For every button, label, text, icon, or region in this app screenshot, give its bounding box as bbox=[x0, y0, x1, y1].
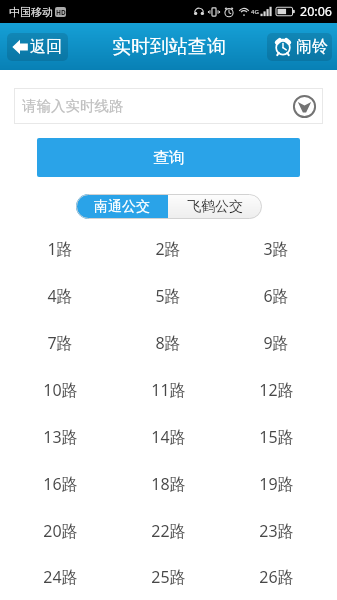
staticText: 闹铃 bbox=[296, 37, 328, 57]
staticText: 18路 bbox=[151, 473, 186, 495]
button[interactable]: 15路 bbox=[222, 413, 330, 460]
button[interactable]: 13路 bbox=[6, 413, 114, 460]
button[interactable]: 5路 bbox=[114, 272, 222, 319]
staticText: 4G bbox=[251, 8, 259, 16]
staticText: 19路 bbox=[259, 473, 294, 495]
staticText: 实时到站查询 bbox=[112, 35, 226, 59]
staticText: HD bbox=[56, 8, 66, 17]
button[interactable]: 20路 bbox=[6, 507, 114, 554]
button[interactable]: 返回 bbox=[7, 33, 68, 61]
button[interactable]: 8路 bbox=[114, 319, 222, 366]
staticText: 20路 bbox=[43, 520, 78, 542]
button[interactable]: 24路 bbox=[6, 554, 114, 600]
staticText: 南通公交 bbox=[94, 198, 150, 216]
staticText: 23路 bbox=[259, 520, 294, 542]
button[interactable]: 9路 bbox=[222, 319, 330, 366]
staticText: 26路 bbox=[259, 566, 294, 588]
button[interactable]: 南通公交 bbox=[76, 194, 168, 219]
staticText: 15路 bbox=[259, 426, 294, 448]
button[interactable]: 4路 bbox=[6, 272, 114, 319]
staticText: 请输入实时线路 bbox=[22, 97, 124, 115]
staticText: 9路 bbox=[263, 332, 289, 354]
staticText: 4路 bbox=[47, 285, 73, 307]
staticText: 10路 bbox=[43, 379, 78, 401]
staticText: 3路 bbox=[263, 238, 289, 260]
button[interactable]: 19路 bbox=[222, 460, 330, 507]
button[interactable]: 25路 bbox=[114, 554, 222, 600]
button[interactable]: 查询 bbox=[37, 138, 300, 177]
staticText: 20:06 bbox=[300, 3, 332, 20]
staticText: 13路 bbox=[43, 426, 78, 448]
button[interactable]: 7路 bbox=[6, 319, 114, 366]
button[interactable]: 14路 bbox=[114, 413, 222, 460]
button[interactable]: 26路 bbox=[222, 554, 330, 600]
button[interactable]: 3路 bbox=[222, 225, 330, 272]
staticText: 8路 bbox=[155, 332, 181, 354]
staticText: 查询 bbox=[153, 148, 185, 168]
button[interactable]: 请输入实时线路 bbox=[14, 88, 323, 124]
staticText: 中国移动 bbox=[9, 5, 53, 19]
staticText: 14路 bbox=[151, 426, 186, 448]
button[interactable]: 11路 bbox=[114, 366, 222, 413]
button[interactable]: 6路 bbox=[222, 272, 330, 319]
staticText: 7路 bbox=[47, 332, 73, 354]
staticText: 25路 bbox=[151, 566, 186, 588]
button[interactable]: 2路 bbox=[114, 225, 222, 272]
button[interactable]: 闹铃 bbox=[267, 33, 332, 61]
staticText: 16路 bbox=[43, 473, 78, 495]
button[interactable]: 18路 bbox=[114, 460, 222, 507]
staticText: 22路 bbox=[151, 520, 186, 542]
button[interactable]: 10路 bbox=[6, 366, 114, 413]
staticText: 6路 bbox=[263, 285, 289, 307]
button[interactable]: 1路 bbox=[6, 225, 114, 272]
button[interactable]: 22路 bbox=[114, 507, 222, 554]
staticText: 飞鹤公交 bbox=[187, 198, 243, 216]
staticText: 12路 bbox=[259, 379, 294, 401]
button[interactable]: 飞鹤公交 bbox=[168, 194, 262, 219]
button[interactable]: 12路 bbox=[222, 366, 330, 413]
staticText: 2路 bbox=[155, 238, 181, 260]
staticText: 11路 bbox=[151, 379, 186, 401]
staticText: 返回 bbox=[30, 37, 62, 57]
staticText: 5路 bbox=[155, 285, 181, 307]
staticText: 1路 bbox=[47, 238, 73, 260]
other: Show route list bbox=[293, 95, 316, 118]
button[interactable]: 16路 bbox=[6, 460, 114, 507]
staticText: 24路 bbox=[43, 566, 78, 588]
button[interactable]: 23路 bbox=[222, 507, 330, 554]
